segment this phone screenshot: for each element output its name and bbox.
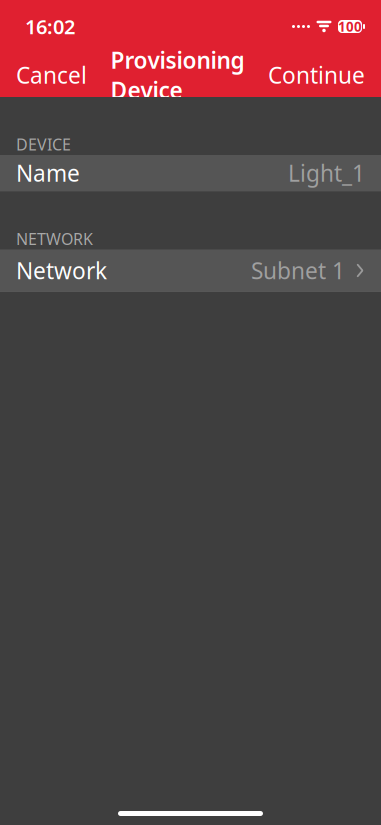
staticText: Cancel [16,60,87,90]
button[interactable]: Name [0,155,381,191]
staticText: Provisioning Device [110,45,244,105]
staticText: Light_1 [288,158,365,188]
staticText: Subnet 1 [251,255,345,285]
staticText: Continue [268,60,365,90]
staticText: Name [16,158,80,188]
button[interactable]: Continue [252,52,381,98]
staticText: 100 [338,18,362,35]
button[interactable]: Network [0,249,381,291]
staticText: Network [16,255,107,285]
staticText: 16:02 [25,13,75,40]
staticText: NETWORK [16,228,93,249]
staticText: DEVICE [16,134,71,155]
button[interactable]: Cancel [0,52,103,98]
